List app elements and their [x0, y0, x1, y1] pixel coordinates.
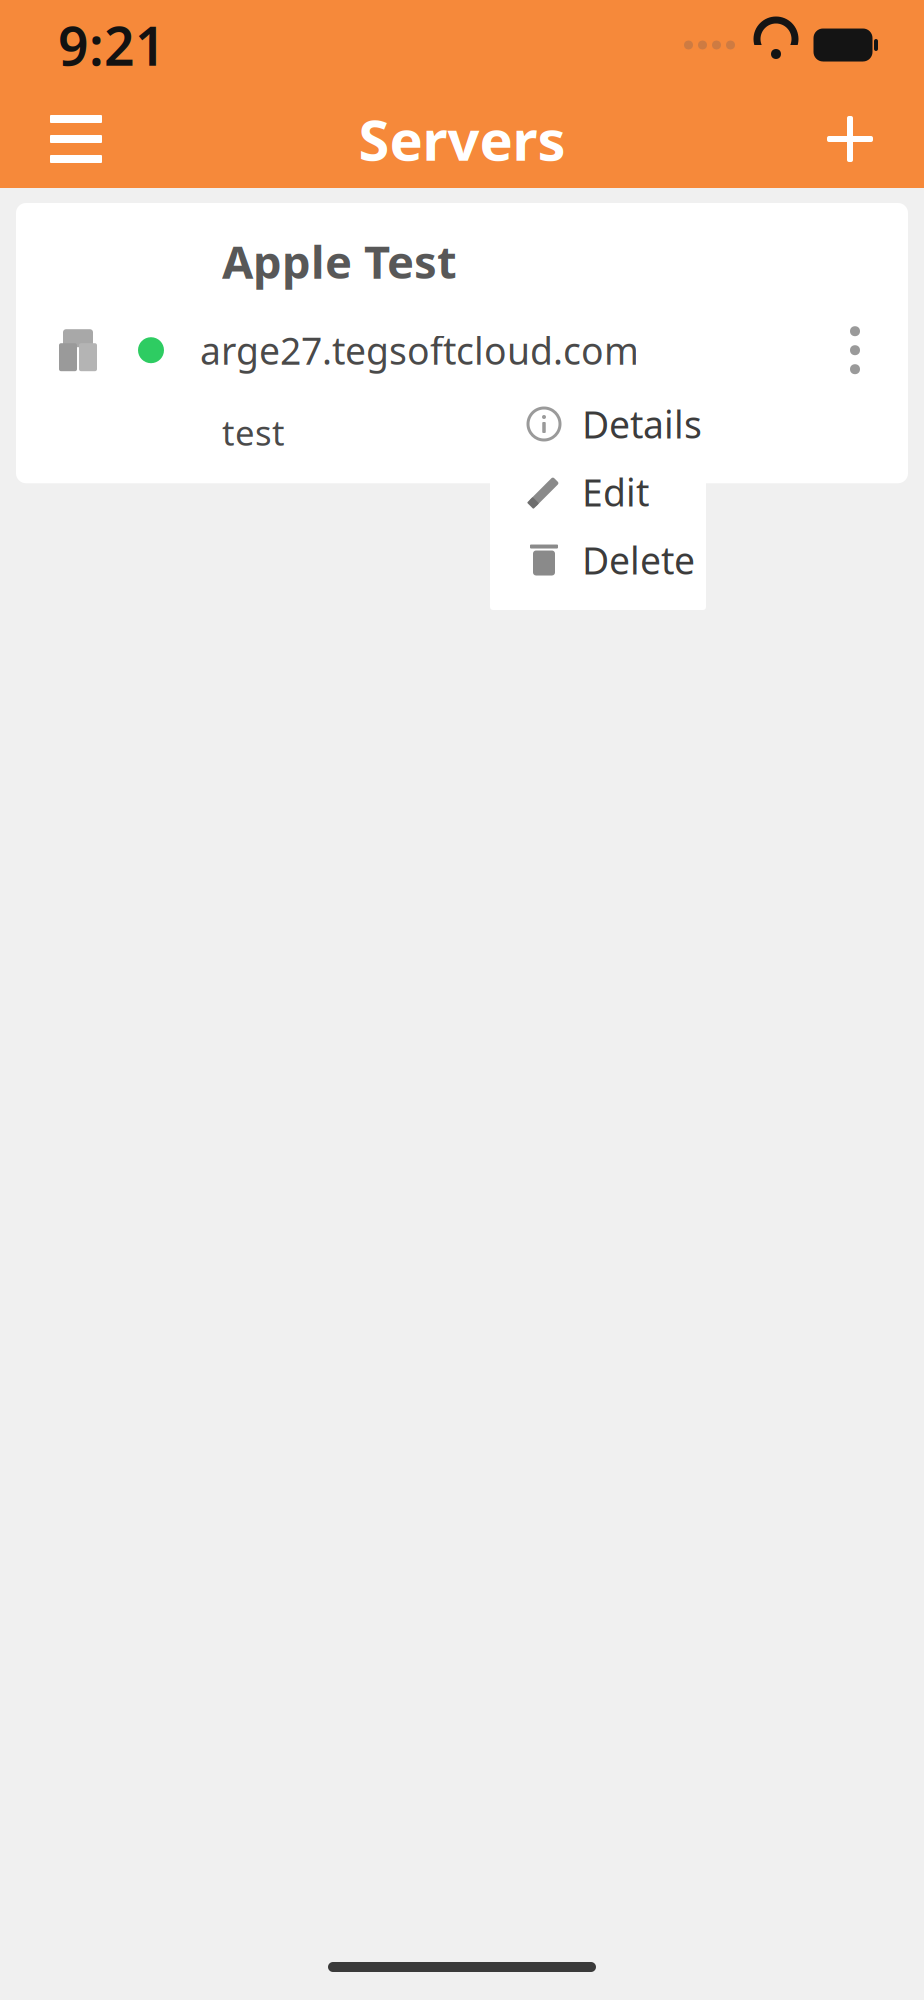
staticText: Apple Test — [222, 231, 457, 291]
button[interactable]: Menu — [28, 91, 124, 187]
staticText: arge27.tegsoftcloud.com — [200, 325, 639, 375]
staticText: Delete — [582, 535, 695, 585]
staticText: Edit — [582, 467, 649, 517]
button[interactable]: Edit — [490, 458, 706, 526]
button[interactable]: Details — [490, 390, 706, 458]
button[interactable]: Delete — [490, 526, 706, 594]
staticText: test — [222, 409, 285, 455]
staticText: 9:21 — [58, 10, 166, 80]
staticText: Details — [582, 399, 702, 449]
button[interactable]: Add server — [802, 91, 898, 187]
button[interactable]: Apple Test — [16, 203, 908, 483]
staticText: Servers — [358, 102, 565, 176]
